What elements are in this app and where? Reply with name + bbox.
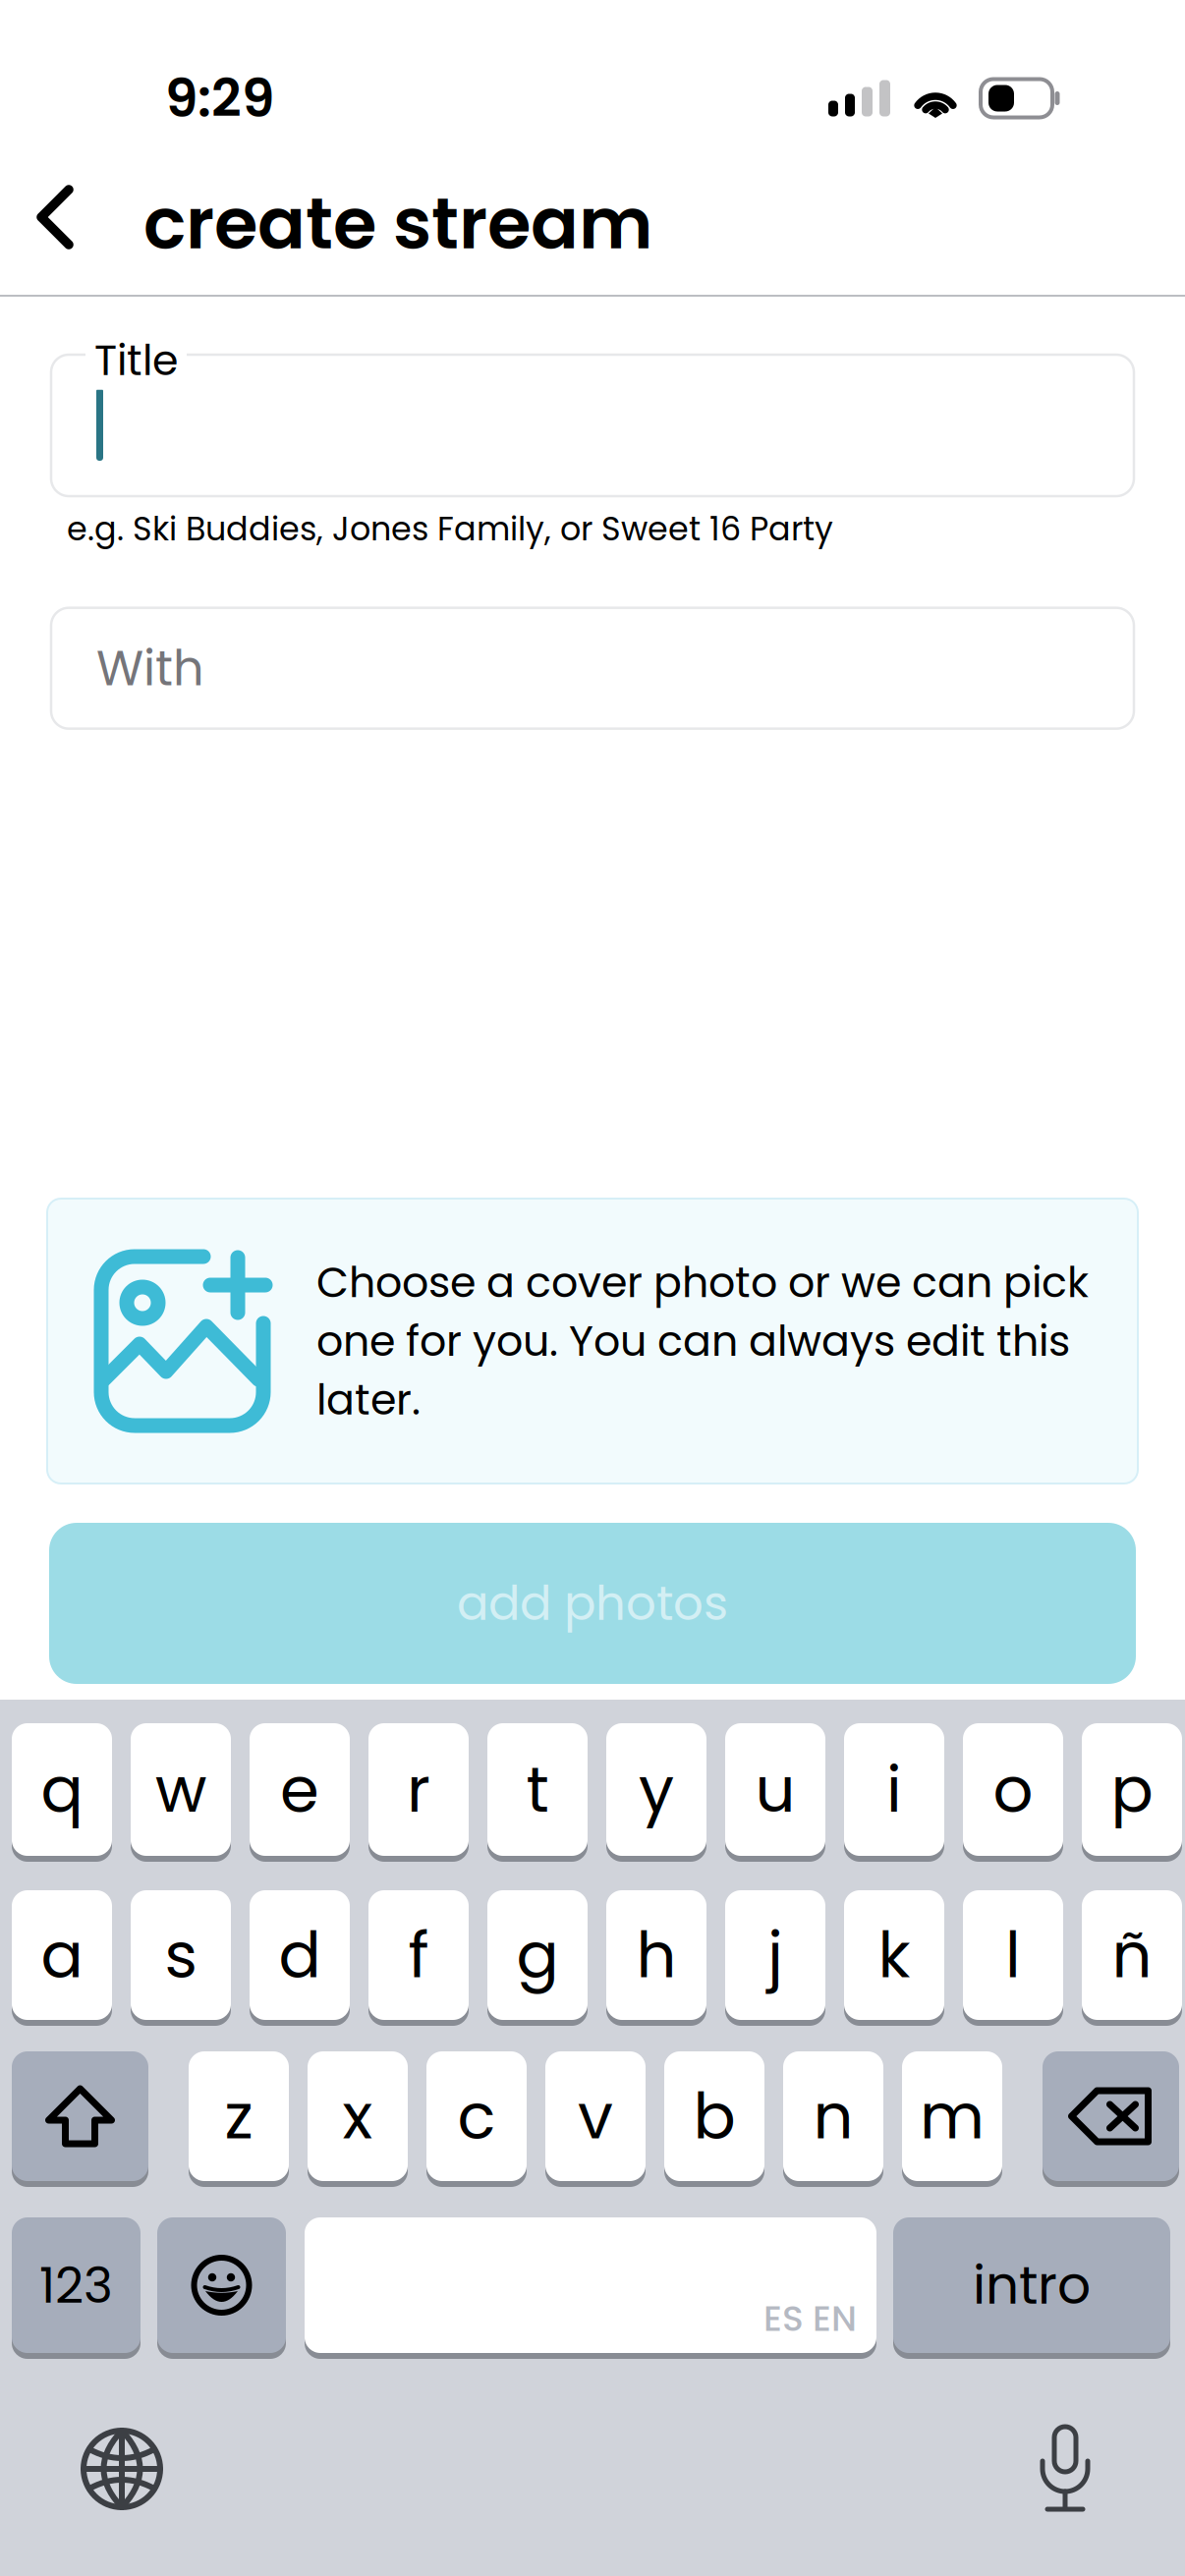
button[interactable]: Back	[14, 140, 92, 295]
button[interactable]: h	[606, 1890, 706, 2026]
button[interactable]: z	[189, 2051, 289, 2187]
button[interactable]: g	[487, 1890, 588, 2026]
staticText: z	[225, 2072, 253, 2160]
staticText: c	[457, 2072, 496, 2160]
staticText: r	[407, 1746, 430, 1834]
button[interactable]: Space	[305, 2217, 876, 2359]
button[interactable]: p	[1082, 1723, 1182, 1862]
staticText: s	[165, 1911, 197, 1999]
button[interactable]: o	[963, 1723, 1063, 1862]
button[interactable]: v	[545, 2051, 646, 2187]
button[interactable]: m	[902, 2051, 1002, 2187]
staticText: t	[526, 1746, 549, 1834]
button[interactable]: u	[725, 1723, 825, 1862]
button[interactable]: b	[664, 2051, 764, 2187]
staticText: a	[41, 1911, 83, 1999]
staticText: f	[408, 1911, 429, 1999]
button[interactable]: f	[368, 1890, 469, 2026]
staticText: ES EN	[763, 2294, 857, 2343]
button[interactable]: intro	[893, 2217, 1170, 2359]
staticText: 123	[39, 2250, 113, 2320]
staticText: ñ	[1112, 1911, 1152, 1999]
button[interactable]: s	[131, 1890, 231, 2026]
staticText: y	[639, 1746, 674, 1834]
button[interactable]: Next keyboard	[37, 2417, 206, 2521]
staticText: Title	[94, 331, 178, 390]
staticText: o	[993, 1746, 1033, 1834]
button[interactable]: w	[131, 1723, 231, 1862]
staticText: b	[693, 2072, 735, 2160]
button[interactable]: d	[250, 1890, 350, 2026]
button[interactable]: Dictation	[983, 2416, 1148, 2522]
button[interactable]: Delete	[1043, 2051, 1179, 2187]
button[interactable]: q	[12, 1723, 112, 1862]
staticText: g	[516, 1911, 559, 1999]
staticText: e.g. Ski Buddies, Jones Family, or Sweet…	[67, 506, 833, 552]
button[interactable]: c	[426, 2051, 527, 2187]
button[interactable]: j	[725, 1890, 825, 2026]
button[interactable]: t	[487, 1723, 588, 1862]
staticText: create stream	[143, 174, 652, 273]
staticText: v	[578, 2072, 613, 2160]
button[interactable]: a	[12, 1890, 112, 2026]
button[interactable]: r	[368, 1723, 469, 1862]
button[interactable]: x	[308, 2051, 408, 2187]
staticText: d	[279, 1911, 321, 1999]
staticText: j	[767, 1911, 783, 1999]
staticText: l	[1005, 1911, 1021, 1999]
button[interactable]: ñ	[1082, 1890, 1182, 2026]
staticText: m	[920, 2072, 985, 2160]
button[interactable]: l	[963, 1890, 1063, 2026]
button[interactable]: k	[844, 1890, 944, 2026]
staticText: n	[813, 2072, 853, 2160]
staticText: Choose a cover photo or we can pick one …	[316, 1253, 1089, 1429]
button[interactable]: y	[606, 1723, 706, 1862]
button[interactable]: n	[783, 2051, 883, 2187]
staticText: p	[1111, 1746, 1153, 1834]
button[interactable]: 123	[12, 2217, 141, 2359]
staticText: u	[755, 1746, 795, 1834]
staticText: x	[342, 2072, 373, 2160]
staticText: w	[155, 1746, 206, 1834]
staticText: intro	[973, 2249, 1091, 2322]
staticText: add photos	[457, 1570, 728, 1636]
button[interactable]: add photos	[49, 1523, 1136, 1684]
staticText: q	[41, 1746, 83, 1834]
staticText: i	[886, 1746, 902, 1834]
staticText: 9:29	[165, 62, 274, 135]
button[interactable]: Shift	[12, 2051, 148, 2187]
button[interactable]: i	[844, 1723, 944, 1862]
button[interactable]: Emoji	[157, 2217, 286, 2359]
staticText: With	[96, 634, 204, 702]
staticText: e	[280, 1746, 319, 1834]
staticText: h	[636, 1911, 677, 1999]
staticText: k	[878, 1911, 910, 1999]
button[interactable]: e	[250, 1723, 350, 1862]
